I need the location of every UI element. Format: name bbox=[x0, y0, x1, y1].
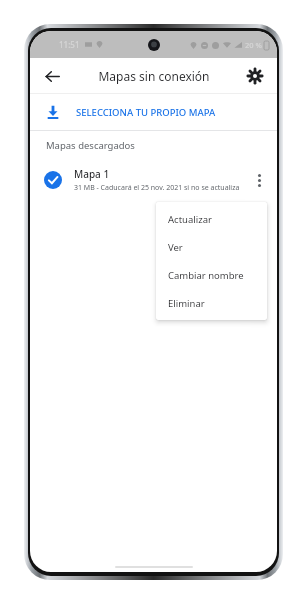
staticText: Ver bbox=[168, 241, 183, 254]
staticText: 31 MB - Caducará el 25 nov. 2021 si no s… bbox=[74, 183, 240, 193]
button[interactable]: Eliminar bbox=[156, 289, 267, 317]
staticText: Eliminar bbox=[168, 297, 205, 310]
staticText: Mapas sin conexión bbox=[98, 68, 210, 84]
button[interactable]: Settings bbox=[241, 62, 269, 90]
button[interactable]: SELECCIONA TU PROPIO MAPA bbox=[30, 94, 277, 130]
staticText: Mapas descargados bbox=[46, 139, 135, 152]
staticText: 11:51 bbox=[59, 39, 80, 50]
button[interactable]: Cambiar nombre bbox=[156, 261, 267, 289]
staticText: SELECCIONA TU PROPIO MAPA bbox=[76, 106, 216, 119]
button[interactable]: Ver bbox=[156, 233, 267, 261]
button[interactable]: Mapa 1 bbox=[30, 160, 277, 200]
staticText: 20 % bbox=[245, 40, 262, 50]
staticText: Actualizar bbox=[168, 213, 212, 226]
button[interactable]: Back bbox=[38, 62, 66, 90]
staticText: Mapa 1 bbox=[74, 167, 110, 181]
button[interactable]: Actualizar bbox=[156, 205, 267, 233]
staticText: Cambiar nombre bbox=[168, 269, 244, 282]
button[interactable]: More options bbox=[245, 166, 273, 194]
